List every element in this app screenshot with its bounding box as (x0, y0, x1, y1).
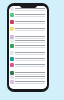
button[interactable] (9, 75, 47, 79)
button[interactable] (9, 63, 47, 67)
button[interactable] (9, 39, 47, 43)
button[interactable] (9, 57, 47, 61)
button[interactable] (9, 80, 47, 84)
button[interactable] (9, 51, 47, 55)
button[interactable] (9, 35, 47, 39)
button[interactable] (9, 27, 47, 31)
button[interactable] (9, 7, 47, 11)
button[interactable] (9, 71, 47, 75)
button[interactable] (9, 44, 47, 48)
button[interactable] (9, 20, 47, 24)
button[interactable] (9, 13, 47, 17)
